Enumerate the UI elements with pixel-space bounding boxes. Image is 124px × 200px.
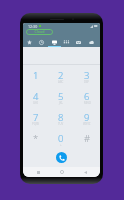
- button[interactable]: Call: [56, 152, 67, 163]
- button[interactable]: #: [74, 128, 100, 149]
- staticText: GHI: [33, 101, 39, 105]
- staticText: TUV: [58, 122, 64, 126]
- button[interactable]: 1: [23, 65, 48, 86]
- staticText: 5: [58, 90, 64, 103]
- button[interactable]: 8: [48, 107, 74, 128]
- staticText: 4: [33, 90, 39, 103]
- button[interactable]: *: [23, 128, 48, 149]
- button[interactable]: Favorites: [23, 37, 35, 47]
- staticText: 9: [84, 111, 90, 124]
- button[interactable]: 4: [23, 86, 48, 107]
- button[interactable]: Cloud Softphone: [26, 29, 53, 35]
- button[interactable]: 3: [74, 65, 100, 86]
- staticText: *: [33, 132, 39, 145]
- staticText: MNO: [84, 101, 91, 105]
- staticText: 3: [84, 69, 90, 82]
- button[interactable]: Back: [77, 167, 93, 177]
- staticText: 8: [58, 111, 64, 124]
- button[interactable]: Recents: [35, 37, 47, 47]
- staticText: WXYZ: [83, 122, 91, 126]
- button[interactable]: Messages: [72, 37, 84, 47]
- staticText: Cloud Softphone: [26, 29, 53, 35]
- staticText: JKL: [59, 101, 63, 105]
- staticText: +: [60, 143, 62, 147]
- staticText: PQRS: [32, 122, 40, 126]
- button[interactable]: Account: [85, 37, 97, 47]
- button[interactable]: 2: [48, 65, 74, 86]
- staticText: DEF: [84, 80, 90, 84]
- staticText: 12:30: [28, 24, 38, 29]
- button[interactable]: 0: [48, 128, 74, 149]
- staticText: 2: [58, 69, 64, 82]
- staticText: 0: [58, 132, 64, 145]
- button[interactable]: 7: [23, 107, 48, 128]
- button[interactable]: Recents: [30, 167, 46, 177]
- button[interactable]: 9: [74, 107, 100, 128]
- button[interactable]: 6: [74, 86, 100, 107]
- button[interactable]: Home: [54, 167, 70, 177]
- staticText: #: [84, 132, 91, 145]
- staticText: 7: [33, 111, 39, 124]
- staticText: ABC: [58, 80, 64, 84]
- button[interactable]: 5: [48, 86, 74, 107]
- staticText: 6: [84, 90, 90, 103]
- staticText: 1: [33, 69, 39, 82]
- button[interactable]: Contacts: [60, 37, 72, 47]
- button[interactable]: Keypad: [48, 37, 60, 47]
